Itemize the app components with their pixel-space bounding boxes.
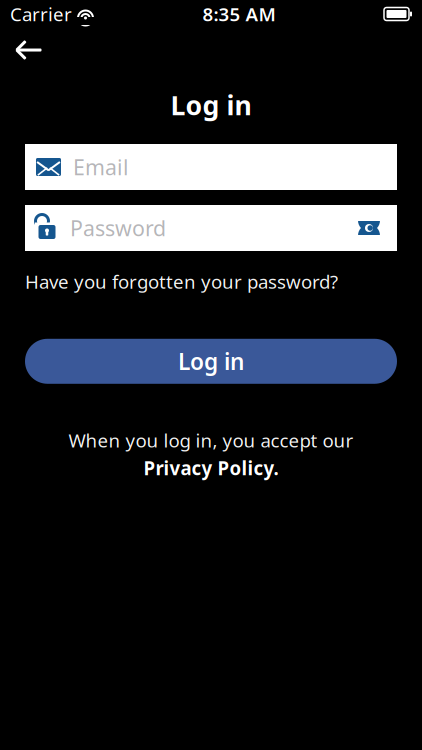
staticText: Log in — [170, 87, 251, 123]
staticText: Email — [73, 153, 129, 181]
staticText: Privacy Policy. — [143, 456, 278, 480]
button[interactable]: Have you forgotten your password? — [25, 263, 338, 300]
button[interactable]: Privacy Policy. — [143, 456, 278, 480]
staticText: Log in — [178, 346, 244, 376]
button[interactable]: Back — [8, 33, 50, 67]
staticText: When you log in, you accept our — [68, 428, 353, 453]
button[interactable]: Log in — [25, 339, 397, 384]
staticText: Carrier — [10, 2, 72, 26]
staticText: 8:35 AM — [202, 2, 275, 26]
button[interactable]: Show password — [352, 211, 386, 245]
staticText: Password — [70, 214, 166, 242]
staticText: Have you forgotten your password? — [25, 269, 338, 294]
